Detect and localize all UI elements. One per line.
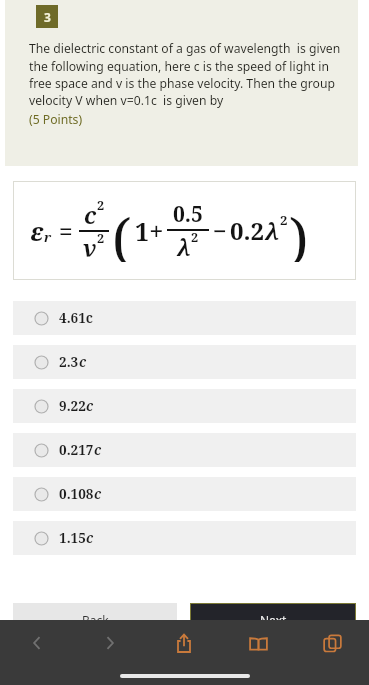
button[interactable]: Back (0, 620, 73, 666)
button[interactable]: 0.217 (13, 433, 356, 467)
staticText: 2 (280, 211, 288, 229)
button[interactable]: Share (147, 620, 221, 666)
staticText: 3 (44, 9, 51, 25)
staticText: ( (112, 200, 132, 262)
button[interactable]: 9.22 (13, 389, 356, 423)
staticText: 2 (97, 229, 105, 246)
staticText: Back (82, 612, 109, 628)
button[interactable]: Forward (73, 620, 147, 666)
staticText: 4.61c (59, 309, 93, 327)
staticText: The dielectric constant of a gas of wave… (29, 40, 348, 108)
staticText: λ (265, 214, 280, 247)
staticText: c (86, 397, 94, 415)
staticText: c (84, 199, 97, 230)
staticText: c (94, 441, 102, 459)
staticText: (5 Points) (29, 111, 83, 128)
staticText: ε (30, 214, 44, 248)
staticText: r (44, 228, 52, 246)
staticText: v (83, 232, 97, 263)
button[interactable]: 2.3 (13, 345, 356, 379)
button[interactable]: 0.108 (13, 477, 356, 511)
staticText: c (94, 485, 102, 503)
staticText: λ (177, 231, 191, 262)
staticText: 1.15 (59, 529, 86, 547)
staticText: 2.3 (59, 353, 79, 371)
staticText: 9.22 (59, 397, 86, 415)
staticText: = (59, 214, 73, 247)
staticText: 0.108 (59, 485, 94, 503)
staticText: Next (260, 612, 287, 628)
button[interactable]: Tabs (295, 620, 369, 666)
button[interactable]: Next (190, 603, 356, 637)
staticText: 0.2 (230, 214, 265, 247)
staticText: 0.217 (59, 441, 94, 459)
staticText: c (86, 529, 94, 547)
staticText: ) (289, 200, 309, 262)
button[interactable]: 4.61c (13, 301, 356, 335)
staticText: 0.5 (173, 200, 203, 229)
button[interactable]: 1.15 (13, 521, 356, 555)
button[interactable]: Back (13, 603, 177, 637)
staticText: 2 (191, 228, 199, 245)
staticText: 2 (97, 196, 105, 213)
button[interactable]: Bookmarks (221, 620, 295, 666)
staticText: c (79, 353, 87, 371)
staticText: − (213, 214, 227, 247)
staticText: 1+ (135, 214, 164, 248)
